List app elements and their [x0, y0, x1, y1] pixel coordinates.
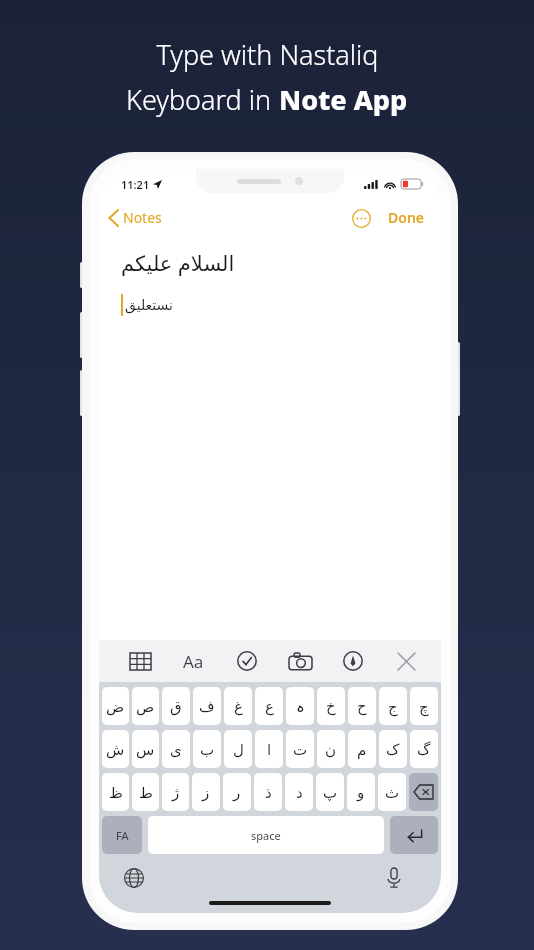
staticText: ی — [170, 741, 182, 758]
staticText: ط — [139, 784, 153, 801]
button[interactable]: FA — [102, 816, 142, 854]
staticText: FA — [116, 828, 129, 843]
staticText: ز — [202, 784, 210, 801]
staticText: Done — [388, 208, 425, 227]
button[interactable]: Camera — [285, 646, 315, 676]
button[interactable]: space — [148, 816, 384, 854]
staticText: ش — [106, 741, 125, 758]
button[interactable]: ث — [378, 773, 406, 811]
staticText: ت — [293, 741, 308, 758]
button[interactable]: ت — [286, 730, 314, 768]
staticText: ث — [385, 784, 400, 801]
button[interactable]: ص — [132, 687, 159, 725]
staticText: Keyboard in — [126, 81, 279, 118]
staticText: ص — [136, 698, 155, 715]
staticText: ن — [325, 741, 337, 758]
button[interactable]: ظ — [102, 773, 129, 811]
button[interactable]: ف — [193, 687, 221, 725]
staticText: ا — [267, 741, 272, 758]
button[interactable]: Change keyboard — [119, 863, 149, 893]
staticText: نستعلیق — [125, 297, 173, 313]
staticText: د — [296, 784, 303, 801]
button[interactable]: ن — [317, 730, 345, 768]
button[interactable]: Return — [390, 816, 438, 854]
staticText: ف — [199, 698, 215, 715]
button[interactable]: More options — [348, 205, 374, 231]
button[interactable]: پ — [316, 773, 344, 811]
button[interactable]: ک — [379, 730, 407, 768]
button[interactable]: ب — [193, 730, 221, 768]
button[interactable]: ہ — [286, 687, 314, 725]
button[interactable]: غ — [224, 687, 252, 725]
staticText: ہ — [296, 698, 305, 715]
button[interactable]: ح — [348, 687, 376, 725]
button[interactable]: ا — [255, 730, 283, 768]
staticText: س — [136, 741, 155, 758]
staticText: السلام علیکم — [121, 249, 235, 278]
button[interactable]: Close keyboard — [391, 646, 421, 676]
staticText: پ — [323, 784, 338, 801]
staticText: Aa — [183, 650, 204, 673]
staticText: Notes — [123, 208, 162, 227]
button[interactable]: ش — [102, 730, 129, 768]
button[interactable]: ذ — [254, 773, 282, 811]
button[interactable]: س — [132, 730, 159, 768]
staticText: ر — [233, 784, 241, 801]
button[interactable]: Aa — [177, 644, 210, 679]
button[interactable]: چ — [410, 687, 438, 725]
button[interactable]: Notes — [99, 204, 170, 231]
staticText: م — [357, 741, 367, 758]
staticText: ح — [357, 698, 367, 715]
staticText: Note App — [279, 81, 408, 118]
staticText: ق — [170, 698, 182, 715]
button[interactable]: ع — [255, 687, 283, 725]
staticText: ج — [388, 698, 398, 715]
staticText: غ — [234, 698, 243, 715]
button[interactable]: ج — [379, 687, 407, 725]
button[interactable]: ی — [162, 730, 190, 768]
button[interactable]: Backspace — [409, 773, 438, 811]
staticText: ض — [106, 698, 125, 715]
staticText: 11:21 — [121, 177, 150, 192]
button[interactable]: ر — [223, 773, 251, 811]
button[interactable]: Dictation — [379, 863, 409, 893]
staticText: گ — [417, 741, 431, 758]
button[interactable]: ق — [162, 687, 190, 725]
staticText: ژ — [172, 784, 180, 801]
staticText: Type with Nastaliq — [156, 36, 379, 73]
button[interactable]: ض — [102, 687, 129, 725]
button[interactable]: ز — [192, 773, 220, 811]
staticText: چ — [419, 698, 429, 715]
button[interactable]: Table — [125, 646, 155, 676]
button[interactable]: گ — [410, 730, 438, 768]
button[interactable]: م — [348, 730, 376, 768]
button[interactable]: Checklist — [232, 646, 262, 676]
button[interactable]: ل — [224, 730, 252, 768]
staticText: ل — [233, 741, 244, 758]
button[interactable]: و — [347, 773, 375, 811]
staticText: و — [357, 784, 365, 801]
staticText: ع — [265, 698, 274, 715]
staticText: space — [251, 828, 281, 843]
staticText: ذ — [265, 784, 272, 801]
button[interactable]: Done — [384, 204, 429, 231]
button[interactable]: د — [285, 773, 313, 811]
staticText: ک — [386, 741, 400, 758]
staticText: خ — [326, 698, 336, 715]
button[interactable]: خ — [317, 687, 345, 725]
button[interactable]: ژ — [162, 773, 189, 811]
staticText: ظ — [109, 784, 123, 801]
button[interactable]: Markup — [338, 646, 368, 676]
button[interactable]: ط — [132, 773, 159, 811]
staticText: ب — [200, 741, 215, 758]
